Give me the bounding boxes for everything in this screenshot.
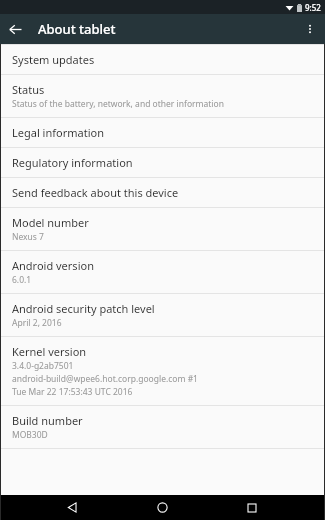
staticText: Android version bbox=[12, 258, 94, 273]
staticText: 6.0.1 bbox=[12, 274, 32, 286]
button[interactable]: Build number bbox=[0, 406, 325, 448]
button[interactable]: Legal information bbox=[0, 118, 325, 147]
staticText: Build number bbox=[12, 413, 83, 428]
button[interactable]: Android version bbox=[0, 251, 325, 293]
button[interactable]: Status bbox=[0, 75, 325, 117]
staticText: Android security patch level bbox=[12, 301, 155, 316]
staticText: MOB30D bbox=[12, 429, 48, 441]
button[interactable]: Recent apps bbox=[235, 495, 269, 520]
button[interactable]: Model number bbox=[0, 208, 325, 250]
staticText: 3.4.0-g2ab7501 bbox=[12, 360, 74, 372]
staticText: Tue Mar 22 17:53:43 UTC 2016 bbox=[12, 386, 133, 398]
staticText: Legal information bbox=[12, 125, 104, 140]
staticText: System updates bbox=[12, 52, 95, 67]
button[interactable]: System updates bbox=[0, 45, 325, 74]
staticText: android-build@wpee6.hot.corp.google.com … bbox=[12, 373, 198, 385]
staticText: April 2, 2016 bbox=[12, 317, 62, 329]
staticText: Regulatory information bbox=[12, 155, 133, 170]
staticText: Status of the battery, network, and othe… bbox=[12, 98, 224, 110]
button[interactable]: Android security patch level bbox=[0, 294, 325, 336]
button[interactable]: Kernel version bbox=[0, 337, 325, 405]
staticText: About tablet bbox=[38, 20, 116, 38]
staticText: Status bbox=[12, 82, 45, 97]
button[interactable]: Send feedback about this device bbox=[0, 178, 325, 207]
staticText: Send feedback about this device bbox=[12, 185, 179, 200]
button[interactable]: Back bbox=[55, 495, 89, 520]
button[interactable]: Home bbox=[145, 495, 179, 520]
staticText: 9:52 bbox=[305, 2, 321, 13]
staticText: Nexus 7 bbox=[12, 231, 44, 243]
staticText: Kernel version bbox=[12, 344, 87, 359]
button[interactable]: More options bbox=[295, 14, 325, 44]
button[interactable]: Regulatory information bbox=[0, 148, 325, 177]
button[interactable]: Back bbox=[0, 14, 30, 44]
staticText: Model number bbox=[12, 215, 89, 230]
